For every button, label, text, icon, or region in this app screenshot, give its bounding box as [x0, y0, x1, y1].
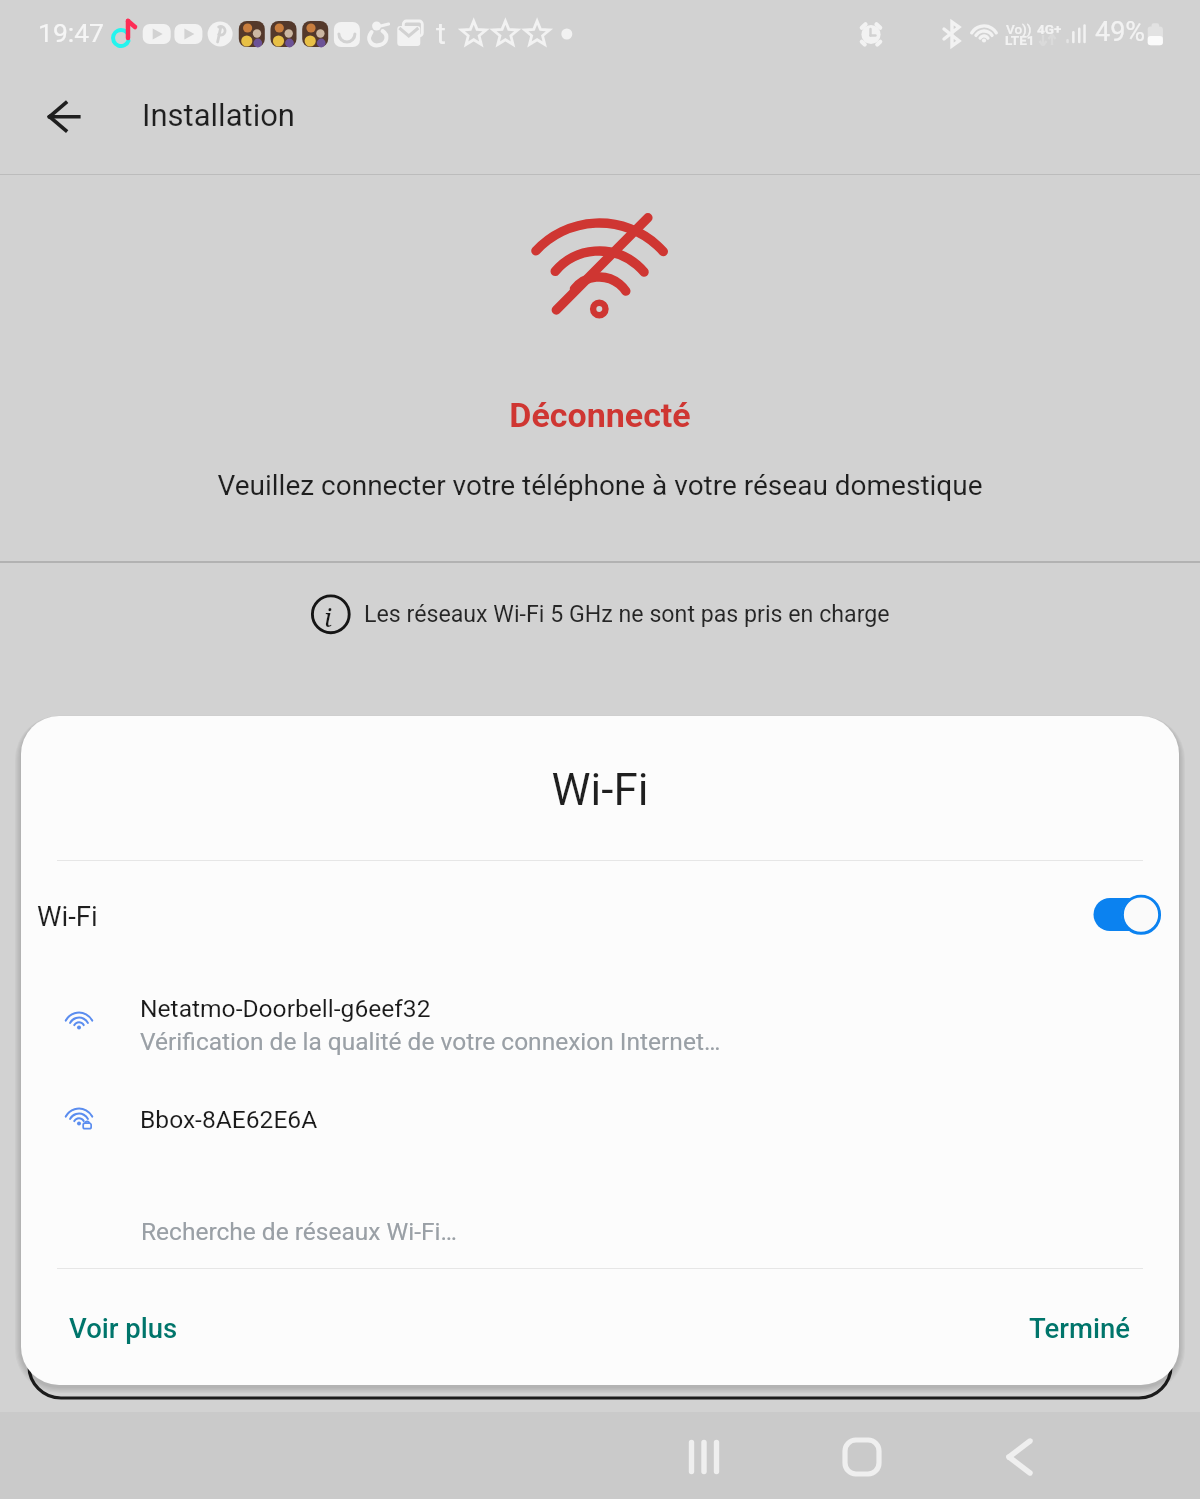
- staticText: Installation: [142, 97, 295, 133]
- staticText: 19:47: [38, 17, 104, 48]
- staticText: Les réseaux Wi-Fi 5 GHz ne sont pas pris…: [364, 600, 890, 627]
- staticText: Déconnecté: [0, 395, 1200, 435]
- button[interactable]: Netatmo-Doorbell-g6eef32: [21, 978, 1179, 1088]
- staticText: Recherche de réseaux Wi-Fi…: [141, 1217, 457, 1246]
- staticText: LTE1: [1005, 32, 1035, 48]
- button[interactable]: Recent apps: [624, 1399, 784, 1499]
- button[interactable]: Wi-Fi: [21, 861, 1179, 978]
- staticText: t: [436, 16, 446, 51]
- staticText: Veuillez connecter votre téléphone à vot…: [0, 469, 1200, 502]
- button[interactable]: Terminé: [1003, 1286, 1156, 1370]
- staticText: Bbox-8AE62E6A: [140, 1105, 318, 1134]
- staticText: i: [324, 599, 332, 634]
- staticText: Wi-Fi: [21, 764, 1179, 816]
- button[interactable]: Voir plus: [43, 1286, 204, 1370]
- staticText: Wi-Fi: [37, 900, 98, 932]
- staticText: Terminé: [1029, 1312, 1130, 1344]
- staticText: Netatmo-Doorbell-g6eef32: [140, 994, 431, 1023]
- staticText: Vérification de la qualité de votre conn…: [140, 1027, 721, 1056]
- staticText: Voir plus: [69, 1312, 178, 1344]
- staticText: 4G+: [1037, 21, 1062, 37]
- staticText: Vo)): [1006, 21, 1032, 37]
- staticText: 49%: [1095, 16, 1146, 48]
- button[interactable]: Home: [784, 1399, 944, 1499]
- button[interactable]: Bbox-8AE62E6A: [21, 1088, 1179, 1168]
- button[interactable]: Back: [18, 71, 110, 163]
- button[interactable]: Back: [944, 1399, 1104, 1499]
